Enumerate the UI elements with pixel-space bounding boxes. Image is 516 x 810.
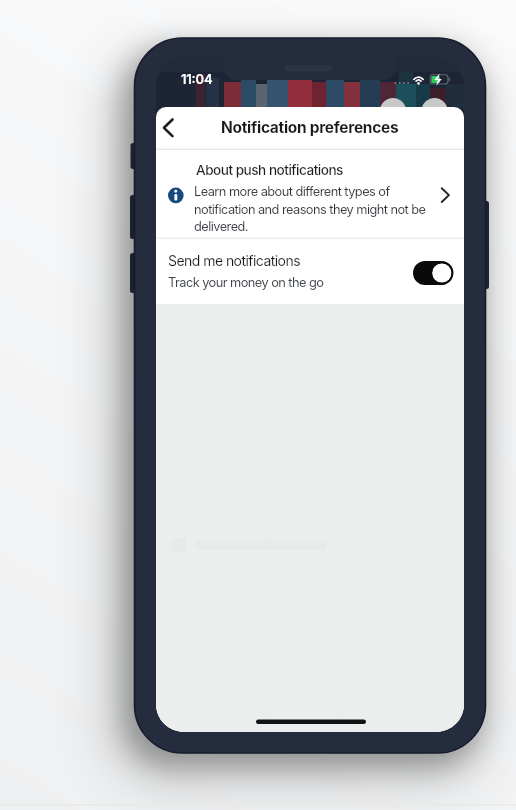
- staticText: Learn more about different types of noti…: [194, 184, 426, 234]
- staticText: 11:04: [181, 71, 213, 87]
- button[interactable]: [156, 240, 464, 303]
- staticText: Send me notifications: [168, 252, 300, 269]
- staticText: Notification preferences: [221, 118, 399, 137]
- staticText: About push notifications: [196, 162, 343, 178]
- button[interactable]: [158, 110, 190, 146]
- staticText: Track your money on the go: [168, 275, 324, 290]
- button[interactable]: [156, 152, 464, 237]
